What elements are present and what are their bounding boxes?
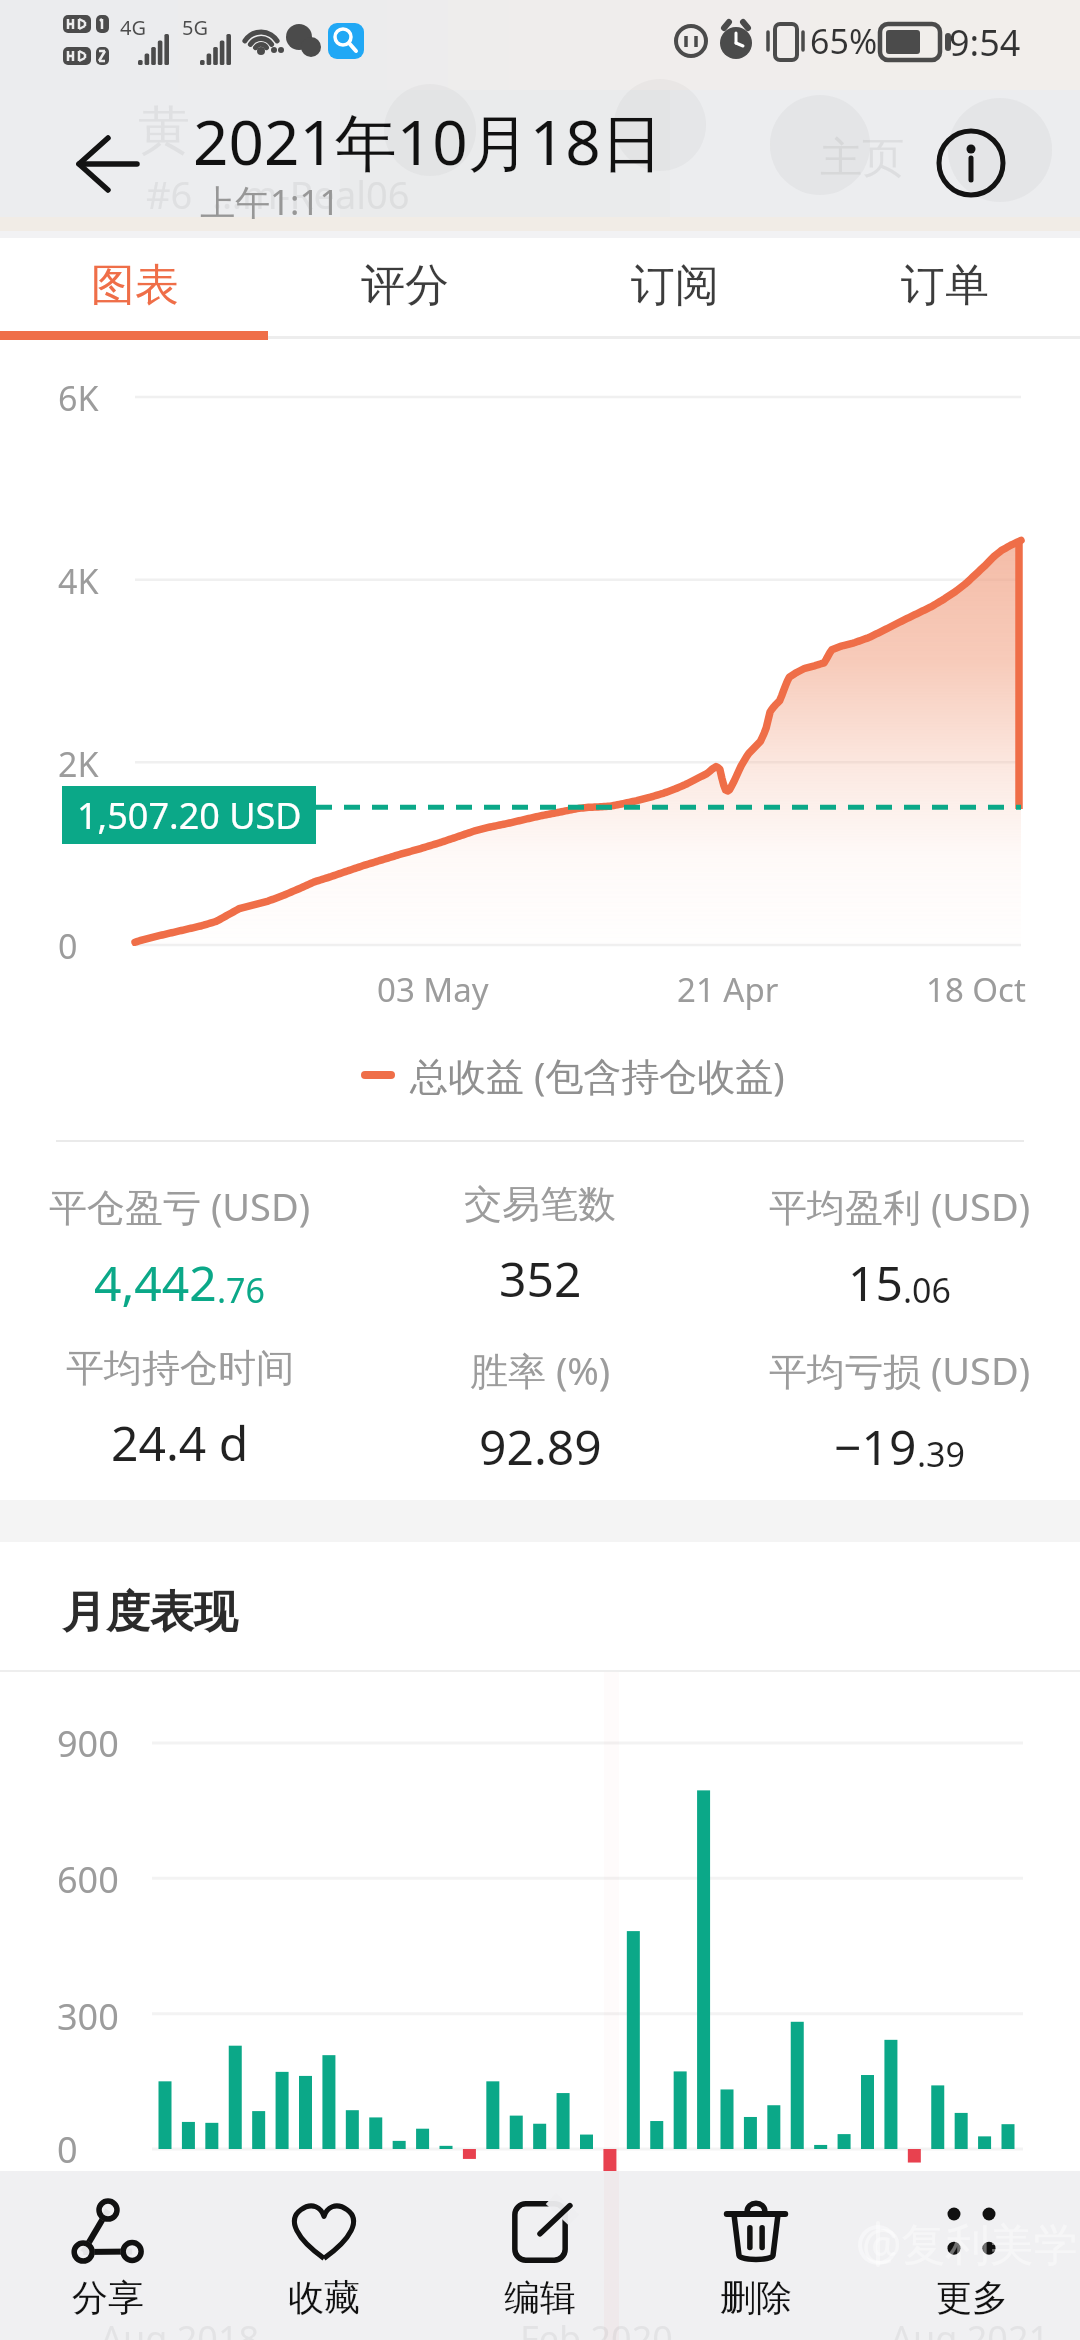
staticText: 评分 [361,258,449,313]
staticText: .06 [903,1267,952,1313]
staticText: 4K [58,558,99,604]
button[interactable]: 删除 [648,2171,864,2340]
staticText: 主页 [820,132,904,185]
staticText: 上午1:11 [200,178,340,226]
staticText: 4,442 [94,1250,217,1315]
button[interactable]: 图表 [0,238,270,332]
staticText: 21 Apr [677,967,779,1012]
staticText: 65% [810,18,878,64]
staticText: 胜率 (%) [470,1344,611,1396]
staticText: 5G [182,14,208,41]
staticText: 交易笔数 [464,1180,616,1228]
staticText: 900 [57,1719,119,1768]
staticText: 18 Oct [926,967,1026,1012]
staticText: 更多 [936,2275,1008,2320]
staticText: 0 [58,923,78,969]
button[interactable]: Back [0,90,150,238]
staticText: 92.89 [479,1414,602,1479]
button[interactable]: 分享 [0,2171,216,2340]
staticText: Feb 2020 [520,2314,673,2340]
button[interactable]: Info [911,90,1031,238]
staticText: 9:54 [949,18,1021,67]
staticText: 24.4 d [111,1410,249,1475]
staticText: 平均持仓时间 [66,1344,294,1392]
staticText: 0 [57,2125,78,2174]
staticText: 600 [57,1855,119,1904]
staticText: 删除 [720,2275,792,2320]
button[interactable]: 更多 [864,2171,1080,2340]
staticText: 2K [58,741,99,787]
staticText: .39 [917,1431,966,1477]
staticText: 总收益 (包含持仓收益) [410,1049,785,1101]
staticText: 平均亏损 (USD) [769,1344,1031,1396]
staticText: 黄 [138,98,190,164]
staticText: 6K [58,375,99,421]
staticText: 1,507.20 USD [77,791,302,840]
staticText: #6 …m-Real06 [146,168,410,220]
staticText: −19 [834,1414,917,1479]
button[interactable]: 评分 [270,238,540,332]
staticText: 编辑 [504,2275,576,2320]
staticText: 15 [848,1250,903,1315]
button[interactable]: 订单 [810,238,1080,332]
staticText: 图表 [91,258,179,313]
staticText: 订阅 [631,258,719,313]
staticText: Aug 2021 [890,2314,1050,2340]
staticText: 平均盈利 (USD) [769,1180,1031,1232]
button[interactable]: 订阅 [540,238,810,332]
staticText: 300 [57,1992,119,2041]
staticText: 月度表现 [62,1585,238,1640]
button[interactable]: 编辑 [432,2171,648,2340]
staticText: .76 [217,1267,266,1313]
staticText: 03 May [377,967,489,1012]
staticText: 分享 [72,2275,144,2320]
staticText: 352 [499,1246,582,1311]
staticText: 2021年10月18日 [193,99,663,184]
staticText: @复利美学 [862,2213,1078,2273]
button[interactable]: 收藏 [216,2171,432,2340]
staticText: 平仓盈亏 (USD) [49,1180,311,1232]
staticText: 订单 [901,258,989,313]
staticText: 4G [120,14,146,41]
staticText: Aug 2018 [100,2314,260,2340]
staticText: 收藏 [288,2275,360,2320]
